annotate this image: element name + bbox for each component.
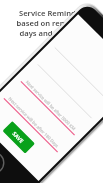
button[interactable]: Service Reminder feature promo [0, 0, 103, 183]
